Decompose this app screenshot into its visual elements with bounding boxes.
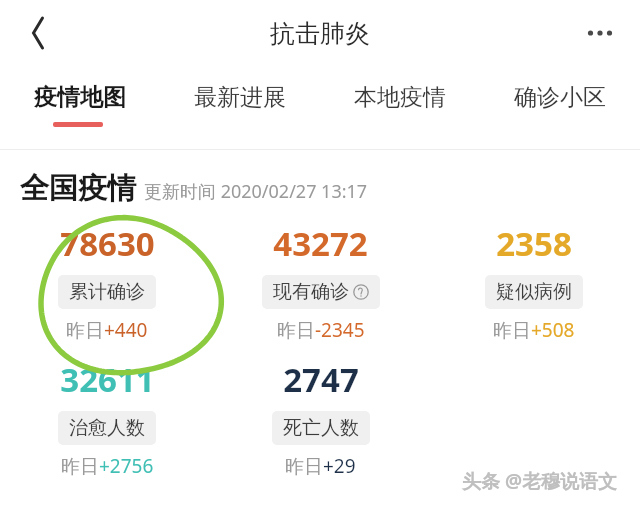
staticText: 昨日-2345 (277, 317, 365, 343)
button[interactable]: 最新进展 (160, 66, 320, 128)
staticText: 全国疫情 (20, 170, 136, 207)
button[interactable]: 本地疫情 (320, 66, 480, 128)
staticText: 本地疫情 (354, 83, 446, 112)
staticText: 32611 (60, 357, 155, 402)
button[interactable]: 43272 (214, 221, 427, 343)
staticText: 昨日+29 (285, 453, 356, 479)
button[interactable]: 疫情地图 (0, 66, 160, 128)
staticText: 更新时间 2020/02/27 13:17 (144, 179, 368, 204)
staticText: 治愈人数 (69, 416, 145, 440)
button[interactable]: Back (14, 9, 62, 57)
staticText: 昨日+508 (493, 317, 575, 343)
staticText: 昨日+2756 (61, 453, 154, 479)
staticText: 78630 (60, 221, 155, 266)
button[interactable]: 2747 (214, 357, 427, 479)
staticText: 累计确诊 (69, 280, 145, 304)
staticText: 疑似病例 (496, 280, 572, 304)
staticText: 2358 (496, 221, 572, 266)
button[interactable]: 确诊小区 (480, 66, 640, 128)
button[interactable]: 78630 (0, 221, 214, 343)
staticText: 死亡人数 (283, 416, 359, 440)
button[interactable]: More options (574, 7, 626, 59)
staticText: 最新进展 (194, 83, 286, 112)
staticText: 确诊小区 (514, 83, 606, 112)
button[interactable]: 32611 (0, 357, 214, 479)
staticText: 43272 (273, 221, 368, 266)
staticText: 昨日+440 (66, 317, 148, 343)
staticText: 头条 @老穆说语文 (462, 468, 618, 494)
staticText: 疫情地图 (34, 83, 126, 112)
staticText: 2747 (283, 357, 359, 402)
button[interactable]: 2358 (427, 221, 640, 343)
staticText: 抗击肺炎 (270, 18, 370, 49)
staticText: 现有确诊 (273, 280, 349, 304)
